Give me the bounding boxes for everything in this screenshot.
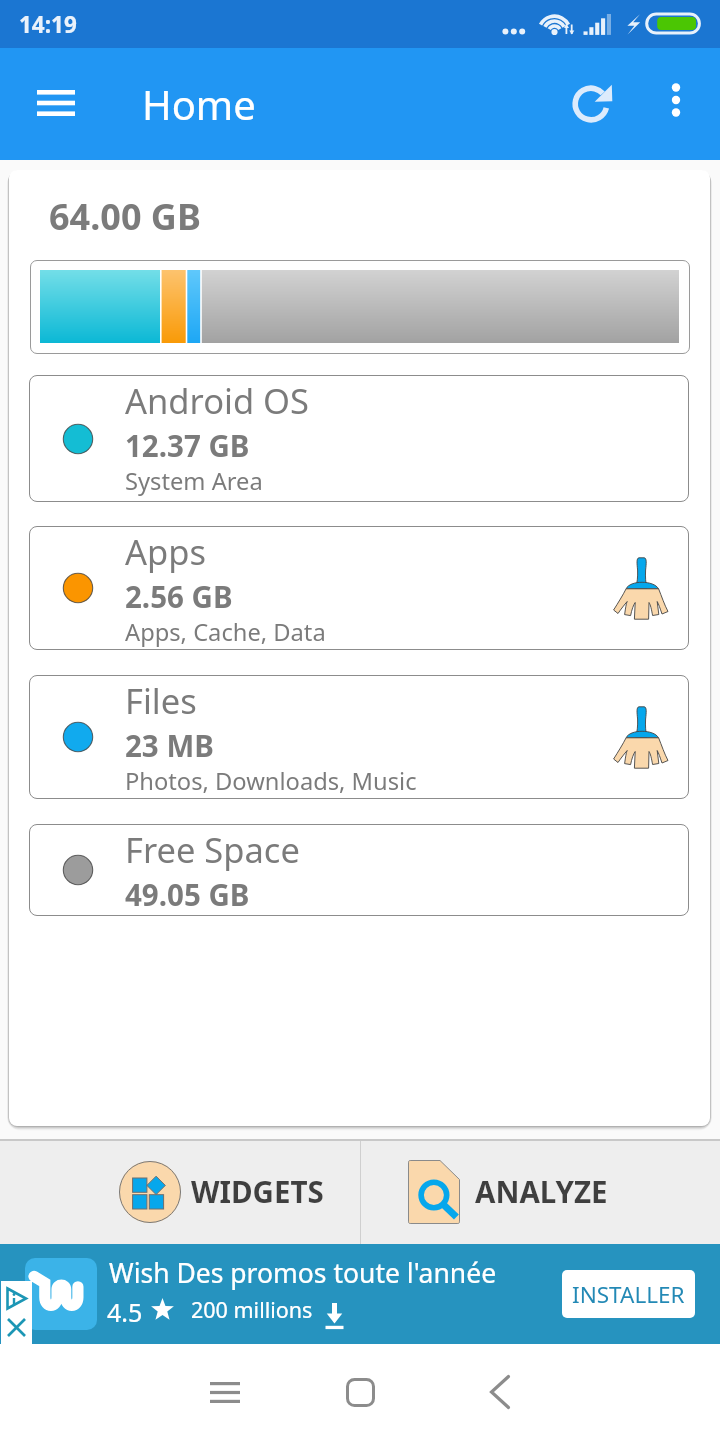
staticText: 4.5 — [107, 1295, 143, 1329]
button[interactable]: Recent apps — [180, 1347, 270, 1437]
staticText: Files — [125, 677, 197, 724]
staticText: Free Space — [125, 826, 300, 873]
staticText: Apps, Cache, Data — [125, 616, 326, 648]
button[interactable]: More options — [646, 72, 706, 132]
staticText: WIDGETS — [191, 1171, 324, 1211]
staticText: Home — [142, 77, 256, 131]
staticText: INSTALLER — [572, 1279, 685, 1310]
staticText: System Area — [125, 465, 263, 497]
button[interactable]: Home — [315, 1347, 405, 1437]
button[interactable]: WIDGETS — [0, 1140, 360, 1244]
button[interactable]: Files — [29, 675, 689, 799]
button[interactable]: Android OS — [29, 375, 689, 502]
staticText: 23 MB — [125, 725, 214, 765]
button[interactable]: Wish app icon — [25, 1258, 97, 1330]
staticText: ANALYZE — [475, 1171, 608, 1211]
button[interactable]: Ad choices — [1, 1281, 32, 1344]
staticText: 12.37 GB — [125, 425, 250, 465]
staticText: 200 millions — [191, 1295, 313, 1324]
button[interactable]: Open navigation menu — [23, 70, 89, 136]
staticText: Wish Des promos toute l'année — [109, 1255, 497, 1291]
staticText: 2.56 GB — [125, 576, 233, 616]
staticText: Photos, Downloads, Music — [125, 765, 417, 797]
button[interactable]: Free Space — [29, 824, 689, 916]
staticText: 64.00 GB — [49, 192, 201, 241]
button[interactable]: Back — [455, 1347, 545, 1437]
staticText: Android OS — [125, 377, 309, 424]
staticText: Apps — [125, 528, 207, 575]
button[interactable]: Refresh — [559, 72, 623, 136]
staticText: 14:19 — [19, 9, 77, 40]
staticText: 49.05 GB — [125, 874, 250, 914]
button[interactable]: ANALYZE — [361, 1140, 720, 1244]
button[interactable]: INSTALLER — [562, 1270, 695, 1318]
button[interactable]: Apps — [29, 526, 689, 650]
